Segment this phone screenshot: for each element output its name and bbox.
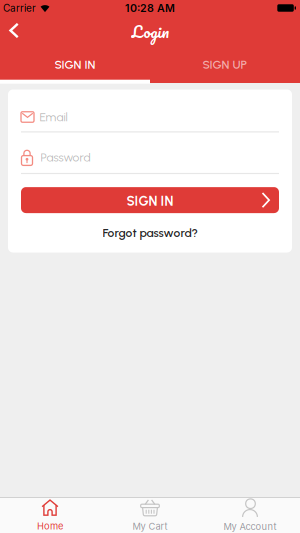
staticText: My Account <box>223 521 276 532</box>
button[interactable]: My Account <box>200 498 300 533</box>
button[interactable]: Forgot password? <box>102 213 197 240</box>
staticText: Login <box>131 18 168 45</box>
button[interactable]: Back <box>0 17 33 49</box>
staticText: Carrier <box>3 2 36 14</box>
staticText: Email <box>39 110 67 124</box>
button[interactable]: Password <box>21 132 279 174</box>
staticText: Password <box>40 150 90 165</box>
button[interactable]: SIGN IN <box>21 187 279 213</box>
button[interactable]: SIGN IN <box>0 50 150 83</box>
button[interactable]: Home <box>0 498 100 533</box>
button[interactable]: Email <box>21 89 279 132</box>
staticText: Forgot password? <box>102 226 197 240</box>
staticText: SIGN IN <box>126 193 173 209</box>
button[interactable]: SIGN UP <box>150 50 300 83</box>
button[interactable]: My Cart <box>100 498 200 533</box>
staticText: Home <box>37 520 63 532</box>
staticText: SIGN IN <box>54 57 95 72</box>
staticText: My Cart <box>132 521 167 532</box>
staticText: SIGN UP <box>202 57 247 72</box>
staticText: 10:28 AM <box>125 1 175 14</box>
